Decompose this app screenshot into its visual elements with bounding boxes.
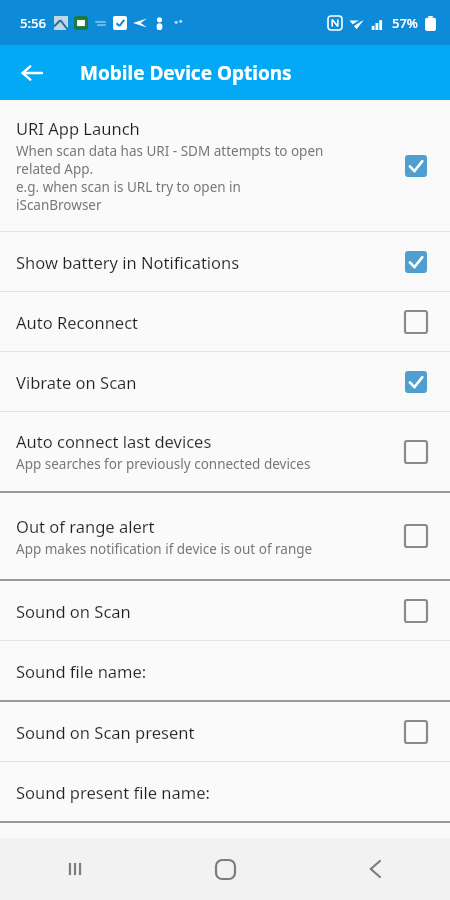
- staticText: Show battery in Notifications: [16, 251, 240, 273]
- button[interactable]: Show battery in Notifications: [0, 232, 450, 291]
- staticText: URI App Launch: [16, 117, 140, 139]
- button[interactable]: Checked: [401, 151, 431, 181]
- staticText: Sound on Scan present: [16, 721, 195, 743]
- staticText: When scan data has URI - SDM attempts to…: [16, 142, 324, 160]
- button[interactable]: Out of range alert: [0, 493, 450, 579]
- button[interactable]: Unchecked: [401, 521, 431, 551]
- button[interactable]: URI App Launch: [0, 100, 450, 231]
- button[interactable]: Checked: [401, 247, 431, 277]
- button[interactable]: Home: [150, 838, 300, 900]
- staticText: Sound present file name:: [16, 781, 210, 803]
- staticText: Sound file name:: [16, 660, 147, 682]
- staticText: App searches for previously connected de…: [16, 455, 311, 473]
- button[interactable]: Back: [300, 838, 450, 900]
- button[interactable]: Checked: [401, 367, 431, 397]
- button[interactable]: Auto connect last devices: [0, 412, 450, 491]
- button[interactable]: Sound present file name:: [0, 762, 450, 821]
- button[interactable]: Recent apps: [0, 838, 150, 900]
- staticText: Vibrate on Scan: [16, 371, 137, 393]
- button[interactable]: Sound on Scan present: [0, 702, 450, 761]
- button[interactable]: Auto Reconnect: [0, 292, 450, 351]
- staticText: iScanBrowser: [16, 196, 102, 214]
- staticText: related App.: [16, 160, 94, 178]
- staticText: Sound on Scan: [16, 600, 131, 622]
- staticText: App makes notification if device is out …: [16, 540, 313, 558]
- staticText: Auto connect last devices: [16, 430, 212, 452]
- staticText: Mobile Device Options: [80, 60, 292, 86]
- staticText: 5:56: [20, 14, 46, 32]
- staticText: e.g. when scan is URL try to open in: [16, 178, 241, 196]
- staticText: Auto Reconnect: [16, 311, 139, 333]
- button[interactable]: Unchecked: [401, 596, 431, 626]
- button[interactable]: Vibrate on Scan: [0, 352, 450, 411]
- button[interactable]: Sound file name:: [0, 641, 450, 700]
- button[interactable]: Unchecked: [401, 307, 431, 337]
- staticText: 57%: [392, 14, 418, 32]
- button[interactable]: Unchecked: [401, 717, 431, 747]
- button[interactable]: Sound on Scan: [0, 581, 450, 640]
- staticText: Out of range alert: [16, 515, 155, 537]
- button[interactable]: Back: [10, 51, 54, 95]
- button[interactable]: Unchecked: [401, 437, 431, 467]
